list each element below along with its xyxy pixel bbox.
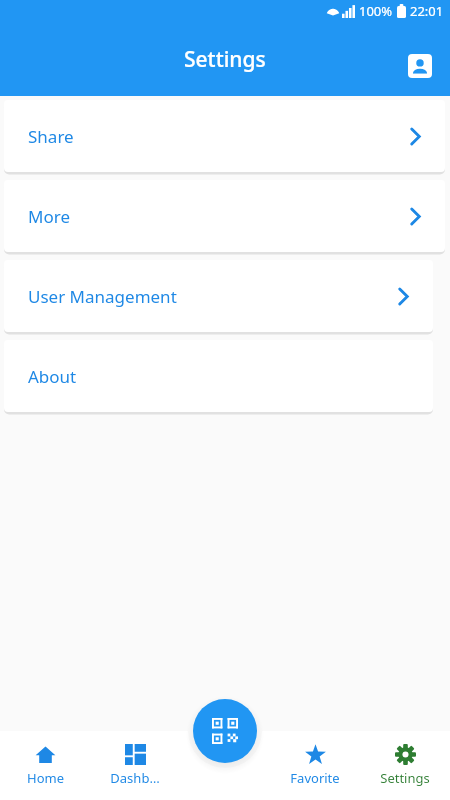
button[interactable]: About (4, 340, 433, 412)
button[interactable]: Settings (360, 731, 450, 800)
staticText: Home (27, 769, 64, 787)
button[interactable]: Favorite (270, 731, 360, 800)
staticText: 22:01 (410, 2, 444, 20)
staticText: Share (28, 125, 74, 148)
staticText: Favorite (290, 769, 340, 787)
button[interactable]: User Management (4, 260, 433, 332)
staticText: 100% (359, 2, 393, 20)
button[interactable]: Share (4, 100, 445, 172)
staticText: More (28, 205, 70, 228)
staticText: About (28, 365, 77, 388)
staticText: Dashb… (110, 769, 160, 787)
button[interactable]: Dashb… (90, 731, 180, 800)
staticText: Settings (184, 45, 266, 74)
button[interactable]: Home (0, 731, 90, 800)
button[interactable]: Account (396, 42, 444, 90)
button[interactable]: More (4, 180, 445, 252)
button[interactable]: Scan QR code (193, 699, 257, 763)
staticText: Settings (380, 769, 430, 787)
staticText: User Management (28, 285, 177, 308)
